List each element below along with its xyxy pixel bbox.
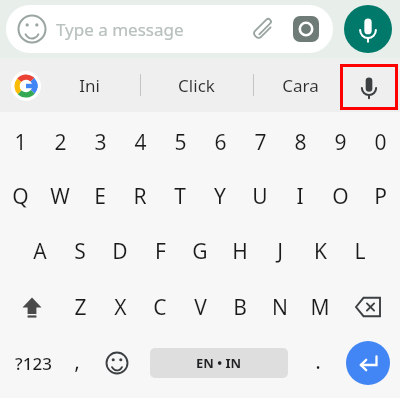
staticText: P xyxy=(374,182,387,211)
button[interactable]: Backspace xyxy=(349,286,391,328)
button[interactable]: C xyxy=(140,285,180,329)
staticText: 5 xyxy=(174,128,187,157)
button[interactable]: D xyxy=(100,229,140,273)
button[interactable]: 4 xyxy=(120,120,160,164)
staticText: Y xyxy=(214,182,226,211)
button[interactable]: Enter xyxy=(346,341,390,385)
button[interactable]: X xyxy=(100,285,140,329)
button[interactable]: T xyxy=(160,174,200,218)
staticText: Q xyxy=(12,182,29,211)
staticText: S xyxy=(74,237,86,266)
staticText: J xyxy=(277,237,283,266)
staticText: T xyxy=(174,182,186,211)
button[interactable]: Emoji keyboard xyxy=(101,341,133,385)
button[interactable]: ?123 xyxy=(7,341,59,385)
button[interactable]: 0 xyxy=(360,120,400,164)
button[interactable]: K xyxy=(300,229,340,273)
staticText: 9 xyxy=(334,128,347,157)
button[interactable]: , xyxy=(60,339,94,383)
staticText: N xyxy=(272,293,288,322)
button[interactable]: P xyxy=(360,174,400,218)
button[interactable]: Z xyxy=(60,285,100,329)
staticText: I xyxy=(296,182,304,211)
button[interactable]: V xyxy=(180,285,220,329)
button[interactable]: A xyxy=(20,229,60,273)
button[interactable]: Ini xyxy=(52,60,126,110)
staticText: C xyxy=(153,293,167,322)
button[interactable]: Shift xyxy=(11,286,53,328)
staticText: 3 xyxy=(94,128,107,157)
staticText: 6 xyxy=(214,128,227,157)
staticText: V xyxy=(194,293,207,322)
staticText: 2 xyxy=(54,128,67,157)
button[interactable]: 5 xyxy=(160,120,200,164)
staticText: Click xyxy=(178,74,215,97)
button[interactable]: Voice input xyxy=(340,64,398,110)
button[interactable]: 6 xyxy=(200,120,240,164)
button[interactable]: Voice message xyxy=(344,5,392,53)
staticText: Cara xyxy=(282,74,319,97)
staticText: Type a message xyxy=(56,18,184,41)
button[interactable]: 2 xyxy=(40,120,80,164)
staticText: Z xyxy=(74,293,87,322)
button[interactable]: E xyxy=(80,174,120,218)
button[interactable]: U xyxy=(240,174,280,218)
button[interactable]: N xyxy=(260,285,300,329)
staticText: 4 xyxy=(134,128,147,157)
button[interactable]: M xyxy=(300,285,340,329)
staticText: 0 xyxy=(374,128,387,157)
button[interactable]: 1 xyxy=(0,120,40,164)
staticText: W xyxy=(50,182,70,211)
staticText: , xyxy=(74,347,80,376)
staticText: 7 xyxy=(254,128,267,157)
staticText: EN • IN xyxy=(196,354,242,372)
button[interactable]: 9 xyxy=(320,120,360,164)
button[interactable]: L xyxy=(340,229,380,273)
button[interactable]: R xyxy=(120,174,160,218)
button[interactable]: Q xyxy=(0,174,40,218)
button[interactable]: 7 xyxy=(240,120,280,164)
button[interactable]: Click xyxy=(158,60,234,110)
button[interactable]: Camera xyxy=(293,16,319,42)
staticText: G xyxy=(192,237,208,266)
staticText: A xyxy=(33,237,47,266)
staticText: . xyxy=(315,347,321,376)
button[interactable]: W xyxy=(40,174,80,218)
button[interactable]: Y xyxy=(200,174,240,218)
button[interactable]: J xyxy=(260,229,300,273)
button[interactable]: I xyxy=(280,174,320,218)
staticText: U xyxy=(252,182,268,211)
button[interactable]: H xyxy=(220,229,260,273)
staticText: B xyxy=(233,293,247,322)
staticText: F xyxy=(155,237,166,266)
staticText: 8 xyxy=(294,128,307,157)
staticText: R xyxy=(133,182,147,211)
button[interactable]: F xyxy=(140,229,180,273)
button[interactable]: O xyxy=(320,174,360,218)
button[interactable]: . xyxy=(301,339,335,383)
button[interactable] xyxy=(6,5,333,53)
staticText: D xyxy=(112,237,128,266)
staticText: M xyxy=(310,293,330,322)
button[interactable]: Emoji xyxy=(17,14,47,44)
staticText: X xyxy=(114,293,127,322)
staticText: L xyxy=(354,237,366,266)
staticText: Ini xyxy=(79,74,100,97)
button[interactable]: Google xyxy=(11,71,41,101)
button[interactable]: B xyxy=(220,285,260,329)
button[interactable]: 8 xyxy=(280,120,320,164)
staticText: H xyxy=(232,237,248,266)
button[interactable]: G xyxy=(180,229,220,273)
button[interactable]: Cara xyxy=(264,60,336,110)
staticText: 1 xyxy=(14,128,27,157)
button[interactable]: S xyxy=(60,229,100,273)
staticText: K xyxy=(314,237,327,266)
button[interactable]: EN • IN xyxy=(150,348,288,378)
button[interactable]: Attach xyxy=(248,14,278,44)
staticText: E xyxy=(94,182,106,211)
staticText: ?123 xyxy=(15,352,52,375)
staticText: O xyxy=(332,182,349,211)
button[interactable]: 3 xyxy=(80,120,120,164)
